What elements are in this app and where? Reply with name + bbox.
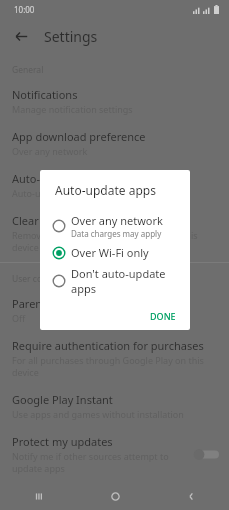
staticText: For all purchases through Google Play on… [12, 354, 217, 378]
button[interactable]: Parental controls [0, 289, 229, 331]
button[interactable]: Home [77, 483, 153, 510]
staticText: Auto-update apps [55, 182, 156, 198]
staticText: Over any network [71, 213, 163, 228]
button[interactable]: Over Wi-Fi only [40, 242, 190, 263]
staticText: Manage notification settings [12, 103, 133, 115]
staticText: General [12, 64, 44, 76]
staticText: Don't auto-update apps [71, 266, 182, 296]
staticText: Clear local search history [12, 213, 141, 228]
staticText: Require authentication for purchases [12, 338, 204, 353]
staticText: Removes all searches you have done on th… [12, 229, 217, 253]
staticText: 10:00 [14, 4, 35, 15]
staticText: Over Wi-Fi only [71, 245, 149, 260]
button[interactable]: Recents [0, 483, 77, 510]
button[interactable]: Protect my updates [0, 427, 229, 481]
staticText: Parental controls [12, 296, 100, 311]
button[interactable]: App download preference [0, 122, 229, 164]
staticText: Use apps and games without installation [12, 408, 184, 420]
staticText: App download preference [12, 129, 146, 144]
button[interactable]: Clear local search history [0, 206, 229, 260]
button[interactable]: Require authentication for purchases [0, 331, 229, 385]
staticText: Over any network [12, 145, 88, 157]
button[interactable]: DONE [136, 302, 190, 330]
button[interactable]: Back [153, 483, 229, 510]
button[interactable]: Don't auto-update apps [40, 263, 190, 299]
button[interactable]: Auto-update apps [0, 164, 229, 206]
staticText: User controls [12, 273, 66, 285]
button[interactable]: Notifications [0, 80, 229, 122]
staticText: Auto-update apps [12, 171, 105, 186]
staticText: Settings [44, 27, 98, 46]
staticText: Data charges may apply [71, 228, 162, 239]
button[interactable]: Back [0, 27, 38, 45]
staticText: Auto-update apps over Wi-Fi only [12, 187, 152, 199]
staticText: DONE [150, 310, 176, 322]
button[interactable]: Over any network [40, 210, 190, 242]
staticText: Protect my updates [12, 434, 113, 449]
staticText: Notify me if other sources attempt to up… [12, 450, 185, 474]
staticText: Off [12, 312, 26, 324]
staticText: Google Play Instant [12, 392, 113, 407]
staticText: Notifications [12, 87, 78, 102]
button[interactable]: Google Play Instant [0, 385, 229, 427]
